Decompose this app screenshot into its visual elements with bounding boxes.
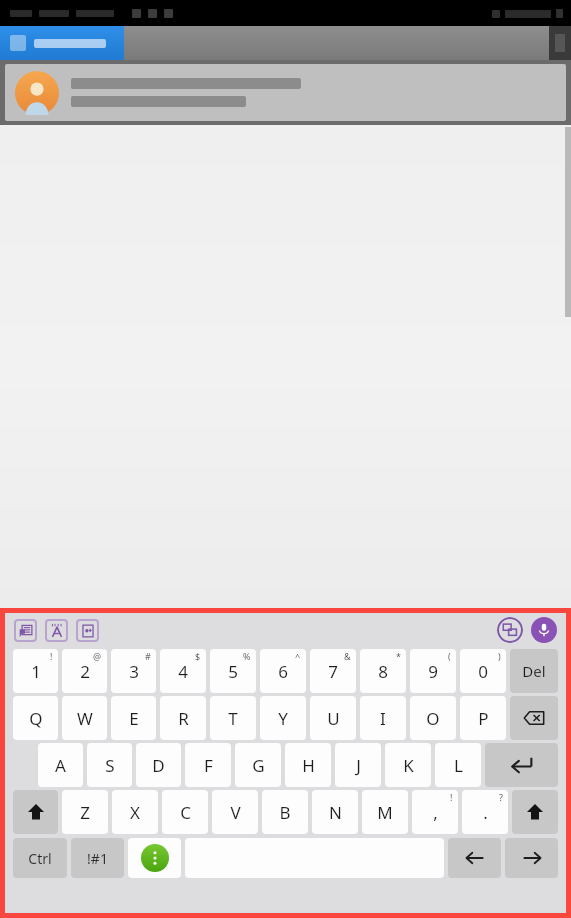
- staticText: Ctrl: [28, 849, 52, 868]
- other: Move left: [464, 847, 486, 869]
- button[interactable]: Messages: [497, 617, 523, 643]
- staticText: E: [129, 707, 139, 730]
- staticText: 1: [31, 660, 41, 683]
- button[interactable]: K: [385, 743, 431, 787]
- button[interactable]: Move left: [448, 838, 501, 878]
- button[interactable]: Del: [510, 649, 558, 693]
- staticText: 6: [278, 660, 288, 683]
- staticText: W: [77, 707, 93, 730]
- button[interactable]: O: [410, 696, 456, 740]
- button[interactable]: Q: [13, 696, 58, 740]
- button[interactable]: ,: [412, 790, 458, 834]
- button[interactable]: E: [111, 696, 156, 740]
- button[interactable]: R: [160, 696, 206, 740]
- staticText: ^: [295, 650, 301, 662]
- button[interactable]: Ctrl: [13, 838, 67, 878]
- staticText: ): [498, 650, 501, 662]
- button[interactable]: Voice input: [531, 617, 557, 643]
- button[interactable]: G: [235, 743, 281, 787]
- button[interactable]: U: [310, 696, 356, 740]
- other: Shift: [26, 802, 46, 822]
- staticText: %: [243, 650, 251, 662]
- button[interactable]: Keyboard options: [128, 838, 181, 878]
- staticText: #: [145, 650, 151, 662]
- staticText: N: [329, 801, 342, 824]
- button[interactable]: More: [549, 26, 571, 60]
- button[interactable]: X: [112, 790, 158, 834]
- button[interactable]: 8: [360, 649, 406, 693]
- button[interactable]: C: [162, 790, 208, 834]
- button[interactable]: B: [262, 790, 308, 834]
- button[interactable]: P: [460, 696, 506, 740]
- button[interactable]: 1: [13, 649, 58, 693]
- button[interactable]: Backspace: [510, 696, 558, 740]
- staticText: R: [178, 707, 189, 730]
- button[interactable]: N: [312, 790, 358, 834]
- button[interactable]: [5, 64, 566, 121]
- staticText: Y: [278, 707, 288, 730]
- button[interactable]: 0: [460, 649, 506, 693]
- button[interactable]: A: [38, 743, 83, 787]
- button[interactable]: Enter: [485, 743, 558, 787]
- staticText: F: [204, 754, 213, 777]
- button[interactable]: 4: [160, 649, 206, 693]
- staticText: 9: [428, 660, 438, 683]
- staticText: B: [279, 801, 291, 824]
- staticText: G: [252, 754, 265, 777]
- other: Shift: [525, 802, 545, 822]
- button[interactable]: [0, 26, 124, 60]
- button[interactable]: 3: [111, 649, 156, 693]
- button[interactable]: L: [435, 743, 481, 787]
- staticText: C: [180, 801, 191, 824]
- staticText: 5: [228, 660, 238, 683]
- staticText: L: [454, 754, 463, 777]
- button[interactable]: Shift: [512, 790, 558, 834]
- button[interactable]: !#1: [71, 838, 124, 878]
- staticText: 3: [129, 660, 139, 683]
- button[interactable]: Y: [260, 696, 306, 740]
- button[interactable]: .: [462, 790, 508, 834]
- staticText: Z: [80, 801, 90, 824]
- button[interactable]: J: [335, 743, 381, 787]
- button[interactable]: Move right: [505, 838, 558, 878]
- staticText: !: [50, 650, 53, 662]
- button[interactable]: Shift: [13, 790, 58, 834]
- button[interactable]: Z: [62, 790, 108, 834]
- button[interactable]: F: [185, 743, 231, 787]
- staticText: 4: [178, 660, 188, 683]
- button[interactable]: W: [62, 696, 107, 740]
- staticText: I: [380, 707, 386, 730]
- button[interactable]: H: [285, 743, 331, 787]
- button[interactable]: Sticker: [76, 619, 99, 642]
- staticText: S: [105, 754, 115, 777]
- button[interactable]: M: [362, 790, 408, 834]
- button[interactable]: 7: [310, 649, 356, 693]
- staticText: Q: [29, 707, 43, 730]
- staticText: &: [344, 650, 351, 662]
- button[interactable]: 6: [260, 649, 306, 693]
- staticText: T: [228, 707, 238, 730]
- button[interactable]: V: [212, 790, 258, 834]
- button[interactable]: 2: [62, 649, 107, 693]
- staticText: !#1: [87, 849, 108, 868]
- staticText: ,: [433, 801, 438, 824]
- staticText: U: [327, 707, 340, 730]
- button[interactable]: T: [210, 696, 256, 740]
- other: Enter: [509, 752, 535, 778]
- staticText: D: [152, 754, 165, 777]
- button[interactable]: Text style: [45, 619, 68, 642]
- staticText: $: [195, 650, 201, 662]
- staticText: P: [478, 707, 489, 730]
- staticText: H: [302, 754, 315, 777]
- button[interactable]: D: [136, 743, 181, 787]
- staticText: Del: [522, 661, 546, 681]
- staticText: X: [130, 801, 140, 824]
- button[interactable]: 9: [410, 649, 456, 693]
- staticText: ?: [499, 791, 503, 803]
- button[interactable]: S: [87, 743, 132, 787]
- staticText: A: [55, 754, 66, 777]
- button[interactable]: 5: [210, 649, 256, 693]
- button[interactable]: Clipboard: [14, 619, 37, 642]
- button[interactable]: I: [360, 696, 406, 740]
